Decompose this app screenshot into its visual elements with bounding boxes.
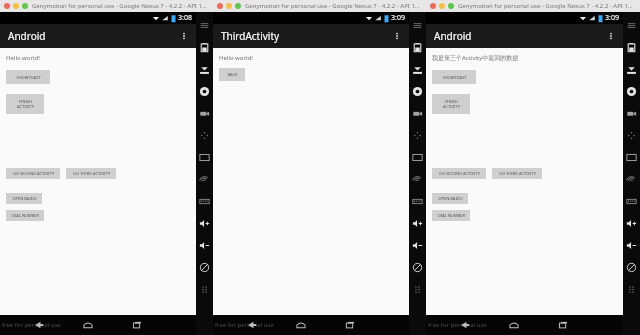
button[interactable]: Volume up [196,212,213,234]
button[interactable]: Back [457,317,473,333]
button[interactable]: GO THIRD ACTIVITY [66,168,116,179]
other: Battery [171,14,176,23]
button[interactable]: Settings [623,278,640,300]
button[interactable]: GO SECOND ACTIVITY [6,168,60,179]
button[interactable]: Keyboard [409,190,426,212]
other: Wi-Fi [579,14,587,22]
staticText: Hello world! [6,54,40,62]
staticText: FINISH ACTIVITY [17,99,34,109]
button[interactable]: Pad [196,124,213,146]
button[interactable]: Minimize [226,3,232,9]
button[interactable]: Camera [623,80,640,102]
button[interactable]: Volume down [196,234,213,256]
button[interactable]: OPEN BAIDU [432,193,468,204]
button[interactable]: GPS [196,58,213,80]
button[interactable]: Back [244,317,260,333]
button[interactable]: Keyboard [623,190,640,212]
button[interactable]: Minimize [13,3,19,9]
button[interactable]: GPS [409,58,426,80]
staticText: SHOWTOAST [16,75,41,80]
button[interactable]: Minimize [439,3,445,9]
staticText: GO SECOND ACTIVITY [13,171,54,176]
button[interactable]: FINISH ACTIVITY [432,94,470,114]
button[interactable]: Home [506,317,522,333]
button[interactable]: Volume down [623,234,640,256]
button[interactable]: More options [172,24,196,48]
button[interactable]: SHOWTOAST [6,70,50,84]
other: Signal [588,14,596,22]
other: Signal [161,14,169,22]
staticText: 3:08 [178,13,192,23]
button[interactable]: Identifiers [623,146,640,168]
staticText: FINISH ACTIVITY [443,99,460,109]
button[interactable]: Recents [555,317,571,333]
button[interactable]: Zoom [448,3,454,9]
button[interactable]: SHOWTOAST [432,70,476,84]
button[interactable]: Camera [196,80,213,102]
button[interactable]: Close [430,3,436,9]
button[interactable]: Home [293,317,309,333]
button[interactable]: Identifiers [409,146,426,168]
staticText: Android [8,29,172,43]
button[interactable]: Rotate [409,256,426,278]
button[interactable]: Keyboard [196,190,213,212]
button[interactable]: Network [623,168,640,190]
button[interactable]: Battery [623,36,640,58]
staticText: free for personal use [2,321,61,329]
staticText: Android [434,29,599,43]
button[interactable]: Menu [196,14,213,36]
button[interactable]: Camcorder [409,102,426,124]
staticText: 3:09 [391,13,405,23]
button[interactable]: Zoom [22,3,28,9]
button[interactable]: GO THIRD ACTIVITY [492,168,542,179]
button[interactable]: Camera [409,80,426,102]
button[interactable]: Pad [623,124,640,146]
staticText: 我是第三个Activity中返回的数据 [432,54,519,62]
button[interactable]: Settings [196,278,213,300]
staticText: DIAL NUMBER [12,213,39,218]
button[interactable]: Network [196,168,213,190]
button[interactable]: FINISH ACTIVITY [6,94,44,114]
staticText: Hello world! [219,54,253,62]
button[interactable]: Battery [409,36,426,58]
button[interactable]: More options [599,24,623,48]
button[interactable]: OPEN BAIDU [6,193,42,204]
button[interactable]: Battery [196,36,213,58]
button[interactable]: Back [31,317,47,333]
button[interactable]: GO SECOND ACTIVITY [432,168,486,179]
button[interactable]: DIAL NUMBER [432,210,470,221]
staticText: GO THIRD ACTIVITY [73,171,110,176]
button[interactable]: Recents [129,317,145,333]
button[interactable]: Volume up [623,212,640,234]
staticText: DIAL NUMBER [438,213,465,218]
button[interactable]: Home [80,317,96,333]
button[interactable]: Settings [409,278,426,300]
button[interactable]: Network [409,168,426,190]
button[interactable]: Recents [342,317,358,333]
button[interactable]: Zoom [235,3,241,9]
button[interactable]: Volume down [409,234,426,256]
button[interactable]: BACK [219,68,245,81]
button[interactable]: DIAL NUMBER [6,210,44,221]
button[interactable]: More options [385,24,409,48]
button[interactable]: Volume up [409,212,426,234]
button[interactable]: GPS [623,58,640,80]
staticText: Genymotion for personal use - Google Nex… [458,2,640,10]
button[interactable]: Menu [623,14,640,36]
staticText: BACK [227,72,238,77]
button[interactable]: Close [4,3,10,9]
button[interactable]: Camcorder [196,102,213,124]
button[interactable]: Menu [409,14,426,36]
button[interactable]: Identifiers [196,146,213,168]
button[interactable]: Camcorder [623,102,640,124]
button[interactable]: Pad [409,124,426,146]
other: Wi-Fi [152,14,160,22]
button[interactable]: Close [217,3,223,9]
button[interactable]: Rotate [196,256,213,278]
staticText: GO SECOND ACTIVITY [439,171,480,176]
staticText: ThirdActivity [221,29,385,43]
staticText: OPEN BAIDU [438,196,463,201]
button[interactable]: Rotate [623,256,640,278]
staticText: GO THIRD ACTIVITY [499,171,536,176]
staticText: OPEN BAIDU [12,196,37,201]
